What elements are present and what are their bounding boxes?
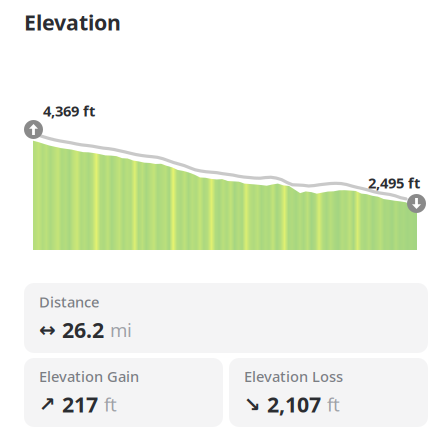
staticText: 26.2 bbox=[62, 316, 104, 344]
staticText: Elevation Gain bbox=[39, 367, 139, 386]
staticText: 2,107 bbox=[267, 390, 321, 418]
staticText: 2,495 ft bbox=[368, 173, 420, 192]
staticText: ↗ bbox=[39, 393, 56, 416]
button[interactable]: Distance bbox=[24, 283, 428, 353]
button[interactable]: Elevation Loss bbox=[229, 358, 428, 427]
staticText: 4,369 ft bbox=[43, 101, 95, 120]
staticText: Elevation Loss bbox=[244, 367, 343, 386]
button[interactable]: Elevation Gain bbox=[24, 358, 223, 427]
staticText: ↘ bbox=[244, 393, 261, 416]
staticText: ↔ bbox=[39, 318, 56, 341]
staticText: ft bbox=[104, 392, 117, 417]
staticText: Distance bbox=[39, 292, 99, 312]
staticText: ft bbox=[327, 392, 340, 417]
staticText: mi bbox=[110, 317, 132, 342]
staticText: 217 bbox=[62, 390, 98, 418]
staticText: Elevation bbox=[24, 8, 121, 36]
